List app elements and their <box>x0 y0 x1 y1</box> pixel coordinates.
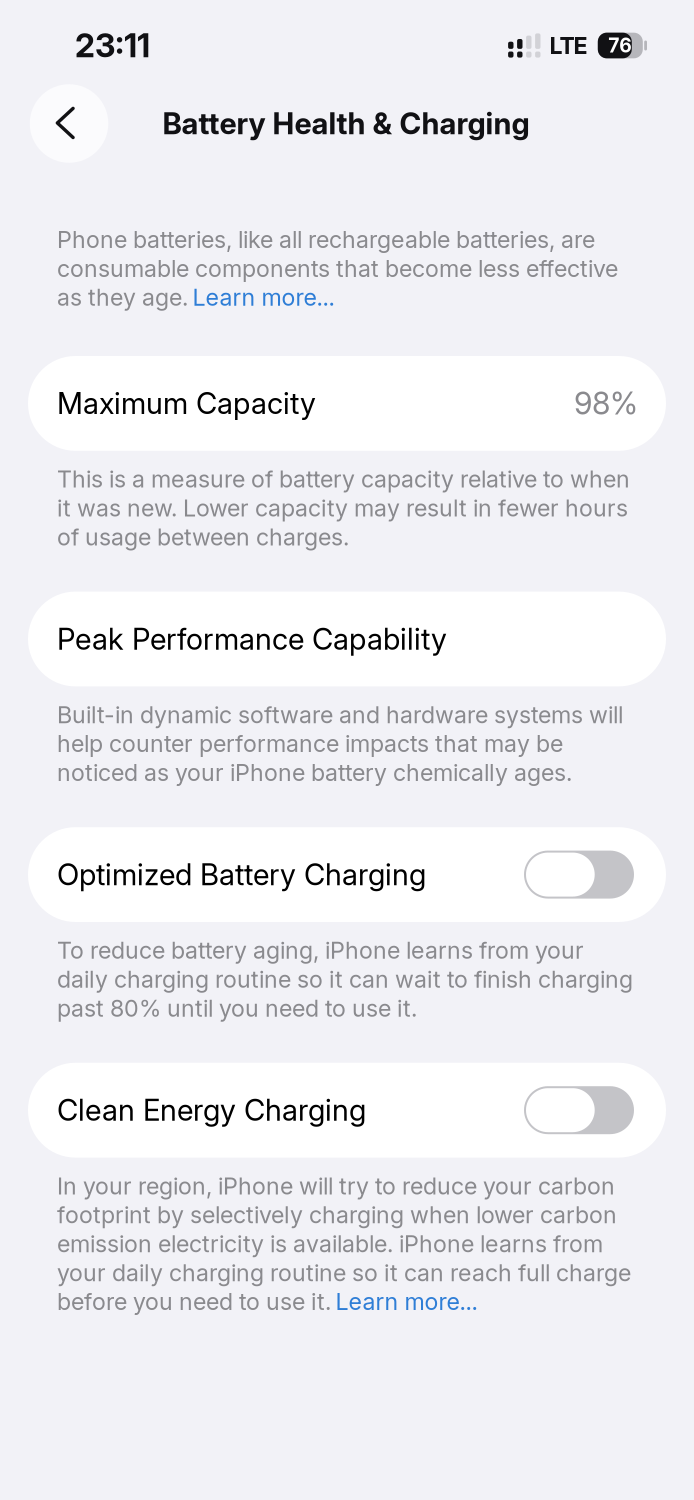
staticText: Clean Energy Charging <box>57 1092 366 1128</box>
staticText: past 80% until you need to use it. <box>57 994 417 1022</box>
staticText: Maximum Capacity <box>57 386 316 421</box>
staticText: LTE <box>549 31 587 59</box>
staticText: Optimized Battery Charging <box>57 857 426 892</box>
staticText: help counter performance impacts that ma… <box>57 729 563 758</box>
staticText: 76 <box>608 34 632 57</box>
button[interactable]: Learn more... <box>336 1287 478 1316</box>
staticText: Built-in dynamic software and hardware s… <box>57 701 623 729</box>
button[interactable]: Optimized Battery Charging <box>28 827 666 922</box>
button[interactable]: Learn more... <box>193 283 335 311</box>
staticText: In your region, iPhone will try to reduc… <box>57 1172 615 1200</box>
staticText: before you need to use it. <box>57 1287 331 1316</box>
staticText: Phone batteries, like all rechargeable b… <box>57 225 595 254</box>
staticText: daily charging routine so it can wait to… <box>57 965 633 993</box>
staticText: Peak Performance Capability <box>57 621 447 657</box>
button[interactable]: Maximum Capacity <box>28 356 666 451</box>
staticText: as they age. <box>57 283 188 311</box>
staticText: your daily charging routine so it can re… <box>57 1259 631 1287</box>
staticText: Learn more... <box>193 283 335 311</box>
staticText: 98% <box>574 385 638 422</box>
staticText: 23:11 <box>75 26 150 65</box>
button[interactable]: Clean Energy Charging <box>28 1063 666 1158</box>
staticText: emission electricity is available. iPhon… <box>57 1230 603 1258</box>
staticText: noticed as your iPhone battery chemicall… <box>57 758 572 787</box>
button[interactable]: Back <box>30 84 108 163</box>
staticText: consumable components that become less e… <box>57 254 618 282</box>
staticText: of usage between charges. <box>57 523 349 551</box>
staticText: This is a measure of battery capacity re… <box>57 465 630 493</box>
staticText: footprint by selectively charging when l… <box>57 1201 617 1229</box>
button[interactable]: Peak Performance Capability <box>28 592 666 686</box>
staticText: To reduce battery aging, iPhone learns f… <box>57 936 584 964</box>
staticText: Learn more... <box>336 1287 478 1316</box>
staticText: it was new. Lower capacity may result in… <box>57 494 628 522</box>
staticText: Battery Health & Charging <box>163 106 530 141</box>
